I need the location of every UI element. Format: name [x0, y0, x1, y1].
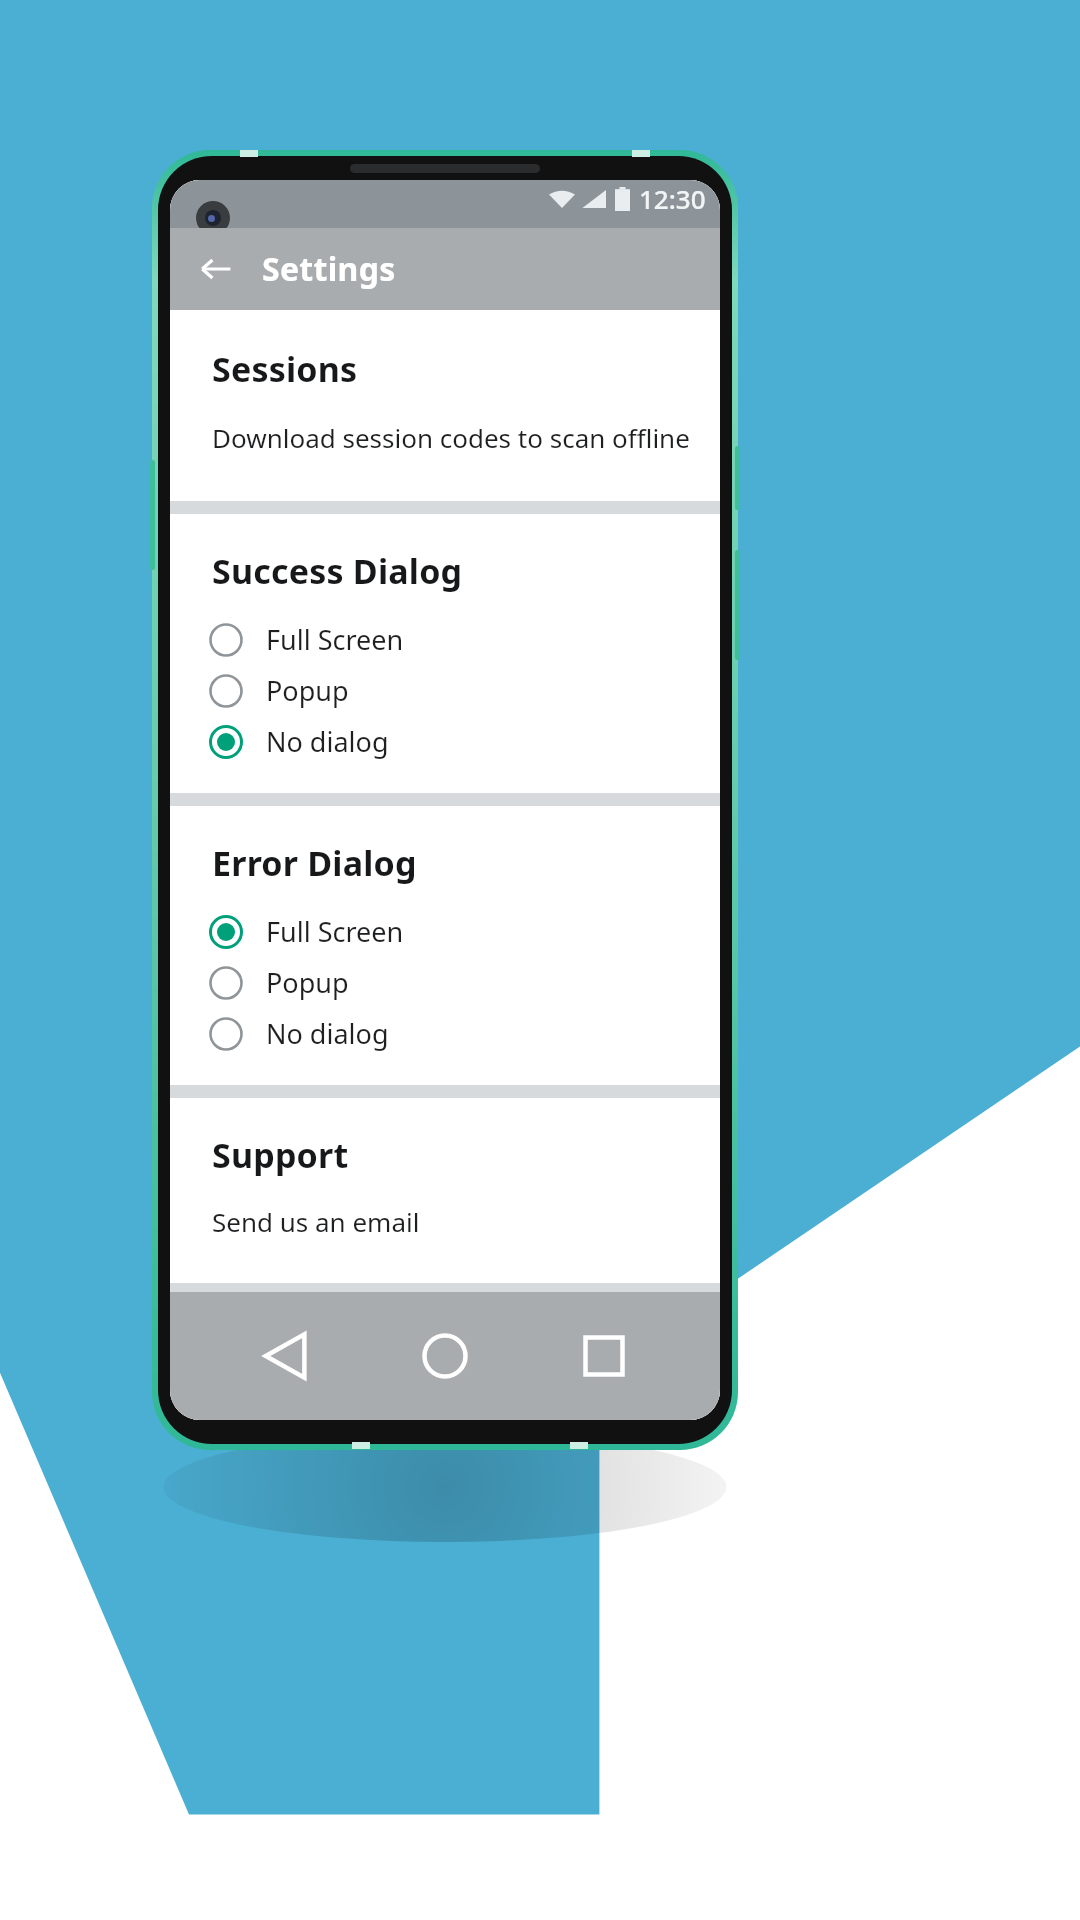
staticText: Full Screen	[266, 621, 404, 658]
button[interactable]: No dialog	[170, 1008, 720, 1059]
button[interactable]: Popup	[170, 665, 720, 716]
button[interactable]: Full Screen	[170, 614, 720, 665]
staticText: Popup	[266, 964, 349, 1001]
staticText: Download session codes to scan offline	[212, 420, 690, 455]
staticText: Send us an email	[212, 1204, 420, 1239]
button[interactable]: Popup	[170, 957, 720, 1008]
button[interactable]: Recent apps	[561, 1313, 647, 1399]
button[interactable]: Sessions	[170, 310, 720, 501]
staticText: Popup	[266, 672, 349, 709]
staticText: Settings	[262, 247, 396, 291]
staticText: Full Screen	[266, 913, 404, 950]
button[interactable]: Home	[402, 1313, 488, 1399]
staticText: No dialog	[266, 1015, 389, 1052]
button[interactable]: Back	[188, 241, 244, 297]
staticText: 12:30	[639, 181, 706, 216]
button[interactable]: Back	[243, 1313, 329, 1399]
button[interactable]: No dialog	[170, 716, 720, 767]
staticText: Success Dialog	[212, 548, 463, 594]
button[interactable]: Support	[170, 1098, 720, 1283]
staticText: Support	[212, 1132, 349, 1178]
staticText: Sessions	[212, 346, 358, 392]
staticText: Error Dialog	[212, 840, 417, 886]
button[interactable]: Full Screen	[170, 906, 720, 957]
staticText: No dialog	[266, 723, 389, 760]
